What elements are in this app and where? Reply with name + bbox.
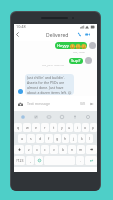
button[interactable]: x: [33, 145, 40, 154]
button[interactable]: Call: [74, 29, 84, 39]
button[interactable]: Send: [88, 100, 95, 107]
button[interactable]: l: [86, 134, 93, 143]
staticText: x: [36, 147, 38, 152]
button[interactable]: ,: [26, 156, 34, 165]
button[interactable]: Camera: [16, 100, 24, 108]
staticText: e: [35, 125, 37, 130]
button[interactable]: .: [76, 156, 84, 165]
staticText: k: [81, 136, 83, 141]
button[interactable]: u: [66, 123, 73, 132]
button[interactable]: q: [14, 123, 22, 132]
button[interactable]: i: [74, 123, 81, 132]
staticText: Text message: [27, 101, 50, 106]
button[interactable]: w: [23, 123, 31, 132]
staticText: i: [77, 125, 78, 130]
staticText: f: [48, 136, 50, 141]
button[interactable]: z: [25, 145, 32, 154]
staticText: v: [53, 147, 55, 152]
staticText: ?123: [16, 158, 24, 163]
button[interactable]: settings: [84, 113, 92, 121]
button[interactable]: b: [59, 145, 67, 154]
button[interactable]: gif: [45, 113, 53, 121]
staticText: .: [80, 158, 81, 163]
staticText: n: [71, 147, 74, 152]
button[interactable]: v: [50, 145, 58, 154]
staticText: h: [64, 136, 67, 141]
button[interactable]: t: [50, 123, 57, 132]
staticText: y: [61, 125, 63, 130]
button[interactable]: shift: [14, 145, 24, 154]
staticText: Delivered: [46, 32, 69, 39]
button[interactable]: mic: [71, 113, 79, 121]
staticText: m: [79, 147, 83, 152]
staticText: u: [68, 125, 71, 130]
staticText: t: [53, 125, 55, 130]
button[interactable]: p: [90, 123, 97, 132]
button[interactable]: r: [41, 123, 49, 132]
button[interactable]: h: [62, 134, 69, 143]
button[interactable]: Sup?: [69, 58, 83, 64]
button[interactable]: Delivered: [46, 29, 69, 41]
staticText: g: [56, 136, 59, 141]
button[interactable]: G: [19, 113, 27, 121]
button[interactable]: e: [32, 123, 40, 132]
button[interactable]: f: [45, 134, 53, 143]
button[interactable]: Video call: [82, 29, 92, 39]
staticText: o: [84, 125, 87, 130]
staticText: a: [21, 136, 23, 141]
button[interactable]: Back: [12, 29, 22, 39]
staticText: z: [28, 147, 30, 152]
staticText: d: [39, 136, 42, 141]
staticText: Thu, Jul 21 10:36 AM: [42, 64, 64, 67]
button[interactable]: ?123: [14, 156, 25, 165]
staticText: b: [62, 147, 65, 152]
button[interactable]: d: [36, 134, 44, 143]
button[interactable]: sticker: [58, 113, 66, 121]
staticText: c: [44, 147, 46, 152]
staticText: p: [92, 125, 95, 130]
button[interactable]: m: [77, 145, 85, 154]
button[interactable]: Heyyy: [55, 42, 87, 49]
staticText: ,: [30, 158, 31, 163]
button[interactable]: backspace: [86, 145, 97, 154]
button[interactable]: a: [18, 134, 26, 143]
staticText: j: [73, 136, 74, 141]
button[interactable]: n: [68, 145, 76, 154]
button[interactable]: o: [82, 123, 89, 132]
button[interactable]: k: [78, 134, 85, 143]
staticText: Thu, 10:35: [73, 50, 85, 53]
button[interactable]: y: [58, 123, 65, 132]
button[interactable]: s: [27, 134, 35, 143]
button[interactable]: enter: [85, 156, 97, 165]
button[interactable]: sliders: [32, 113, 40, 121]
button[interactable]: g: [54, 134, 61, 143]
button[interactable]: Just chillin' and buildin'. Assets for t…: [25, 74, 74, 95]
staticText: s: [30, 136, 32, 141]
staticText: Just chillin' and buildin'. Assets for t…: [27, 75, 73, 95]
staticText: Sup?: [71, 58, 81, 64]
staticText: w: [26, 125, 29, 130]
button[interactable]: c: [41, 145, 49, 154]
staticText: l: [89, 136, 90, 141]
button[interactable]: j: [70, 134, 77, 143]
staticText: SMS: [80, 102, 86, 106]
staticText: r: [44, 125, 46, 130]
staticText: q: [17, 125, 20, 130]
button[interactable]: emoji: [35, 156, 43, 165]
staticText: 10:48: [16, 24, 26, 29]
staticText: Heyyy: [57, 43, 69, 49]
